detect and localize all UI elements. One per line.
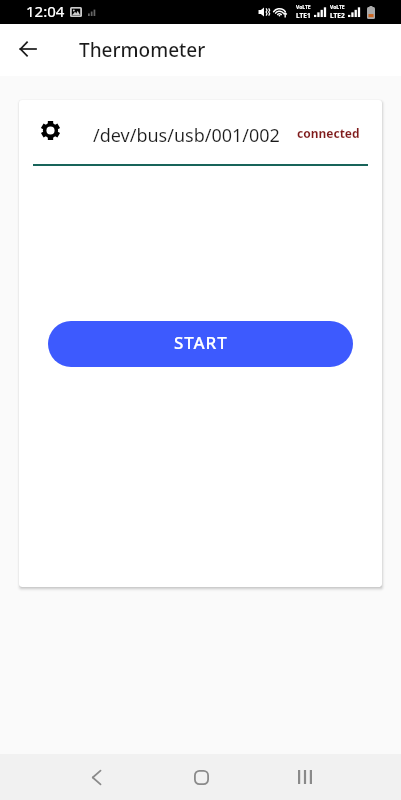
staticText: Thermometer: [79, 37, 206, 63]
staticText: /dev/bus/usb/001/002: [93, 123, 280, 148]
staticText: connected: [297, 125, 360, 141]
staticText: 12:04: [26, 1, 65, 21]
button[interactable]: Recents: [281, 754, 329, 800]
staticText: START: [174, 331, 228, 354]
button[interactable]: Back: [9, 30, 46, 67]
staticText: LTE1: [296, 11, 311, 20]
button[interactable]: START: [48, 321, 353, 367]
staticText: VoLTE: [296, 4, 311, 11]
button[interactable]: Home: [177, 754, 225, 800]
staticText: LTE2: [330, 11, 345, 20]
button[interactable]: Settings: [36, 116, 64, 144]
button[interactable]: Back: [72, 754, 120, 800]
staticText: VoLTE: [330, 4, 345, 11]
